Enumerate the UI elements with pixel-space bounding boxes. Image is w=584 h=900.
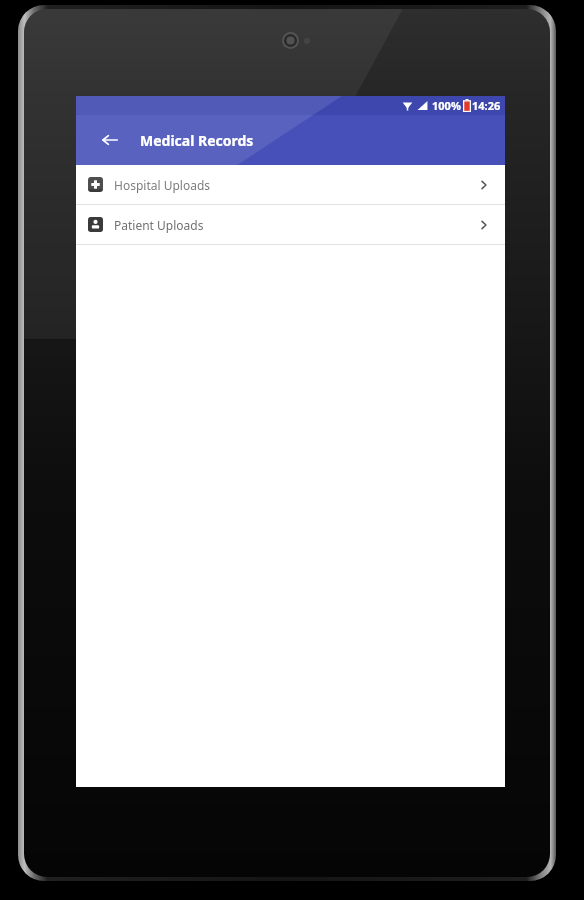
- button[interactable]: Patient Uploads: [76, 205, 505, 244]
- staticText: 100%: [432, 98, 461, 113]
- staticText: Medical Records: [140, 131, 254, 150]
- button[interactable]: Hospital Uploads: [76, 165, 505, 204]
- button[interactable]: Back: [96, 126, 124, 154]
- staticText: Patient Uploads: [114, 217, 204, 233]
- staticText: 14:26: [472, 98, 501, 113]
- staticText: Hospital Uploads: [114, 177, 211, 193]
